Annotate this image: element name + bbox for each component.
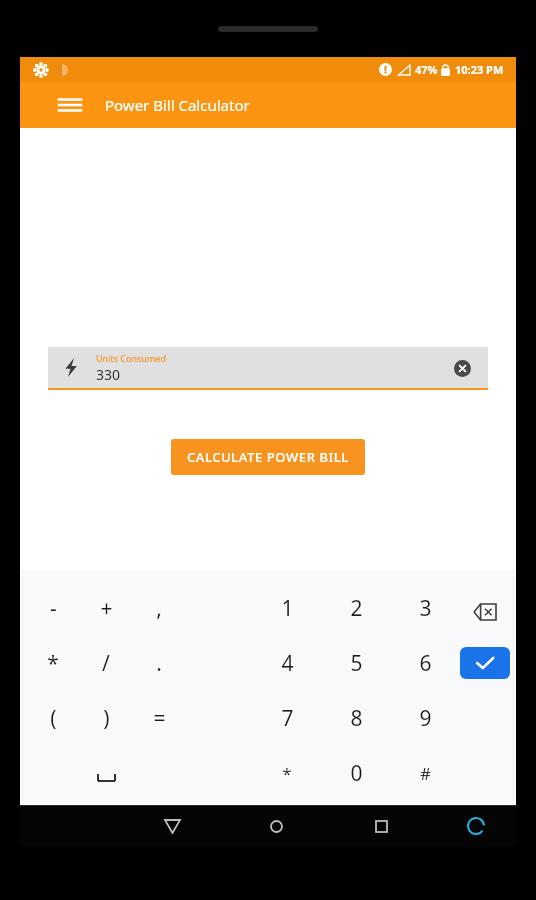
- button[interactable]: Space: [84, 755, 128, 799]
- staticText: -: [50, 594, 57, 623]
- staticText: *: [282, 762, 292, 785]
- button[interactable]: 2: [330, 584, 382, 632]
- button[interactable]: *: [27, 639, 79, 687]
- button[interactable]: Backspace: [461, 588, 509, 636]
- button[interactable]: 6: [399, 639, 451, 687]
- button[interactable]: +: [80, 584, 132, 632]
- staticText: #: [420, 762, 431, 785]
- button[interactable]: (: [27, 694, 79, 742]
- staticText: CALCULATE POWER BILL: [187, 448, 349, 466]
- button[interactable]: 3: [399, 584, 451, 632]
- staticText: 4: [281, 649, 294, 678]
- staticText: 9: [419, 704, 432, 733]
- staticText: 1: [281, 594, 294, 623]
- staticText: .: [156, 649, 162, 678]
- staticText: 47%: [415, 62, 438, 77]
- button[interactable]: Enter: [460, 647, 510, 679]
- button[interactable]: 4: [261, 639, 313, 687]
- button[interactable]: Recent apps: [353, 805, 409, 847]
- button[interactable]: 0: [330, 749, 382, 797]
- button[interactable]: ,: [133, 584, 185, 632]
- staticText: 2: [350, 594, 363, 623]
- button[interactable]: ): [80, 694, 132, 742]
- button[interactable]: Units Consumed: [48, 347, 488, 388]
- button[interactable]: #: [399, 749, 451, 797]
- staticText: +: [100, 594, 113, 623]
- button[interactable]: 1: [261, 584, 313, 632]
- staticText: 330: [96, 365, 121, 384]
- button[interactable]: CALCULATE POWER BILL: [171, 439, 365, 475]
- staticText: 5: [350, 649, 363, 678]
- staticText: ): [103, 704, 110, 733]
- staticText: 7: [281, 704, 294, 733]
- staticText: ,: [156, 594, 162, 623]
- button[interactable]: -: [27, 584, 79, 632]
- staticText: =: [153, 704, 166, 733]
- staticText: Units Consumed: [96, 352, 166, 364]
- button[interactable]: =: [133, 694, 185, 742]
- button[interactable]: Clear text: [449, 355, 475, 381]
- button[interactable]: Assistant: [448, 805, 504, 847]
- button[interactable]: /: [80, 639, 132, 687]
- staticText: 10:23 PM: [455, 62, 504, 77]
- button[interactable]: Open navigation menu: [48, 82, 92, 128]
- button[interactable]: *: [261, 749, 313, 797]
- staticText: *: [47, 649, 59, 678]
- staticText: (: [50, 704, 57, 733]
- button[interactable]: 5: [330, 639, 382, 687]
- button[interactable]: Home: [248, 805, 304, 847]
- button[interactable]: 8: [330, 694, 382, 742]
- staticText: 3: [419, 594, 432, 623]
- button[interactable]: .: [133, 639, 185, 687]
- staticText: 8: [350, 704, 363, 733]
- staticText: 6: [419, 649, 432, 678]
- button[interactable]: 9: [399, 694, 451, 742]
- staticText: Power Bill Calculator: [105, 95, 250, 115]
- button[interactable]: Back: [144, 805, 200, 847]
- staticText: 0: [350, 759, 363, 788]
- button[interactable]: 7: [261, 694, 313, 742]
- staticText: /: [102, 649, 110, 678]
